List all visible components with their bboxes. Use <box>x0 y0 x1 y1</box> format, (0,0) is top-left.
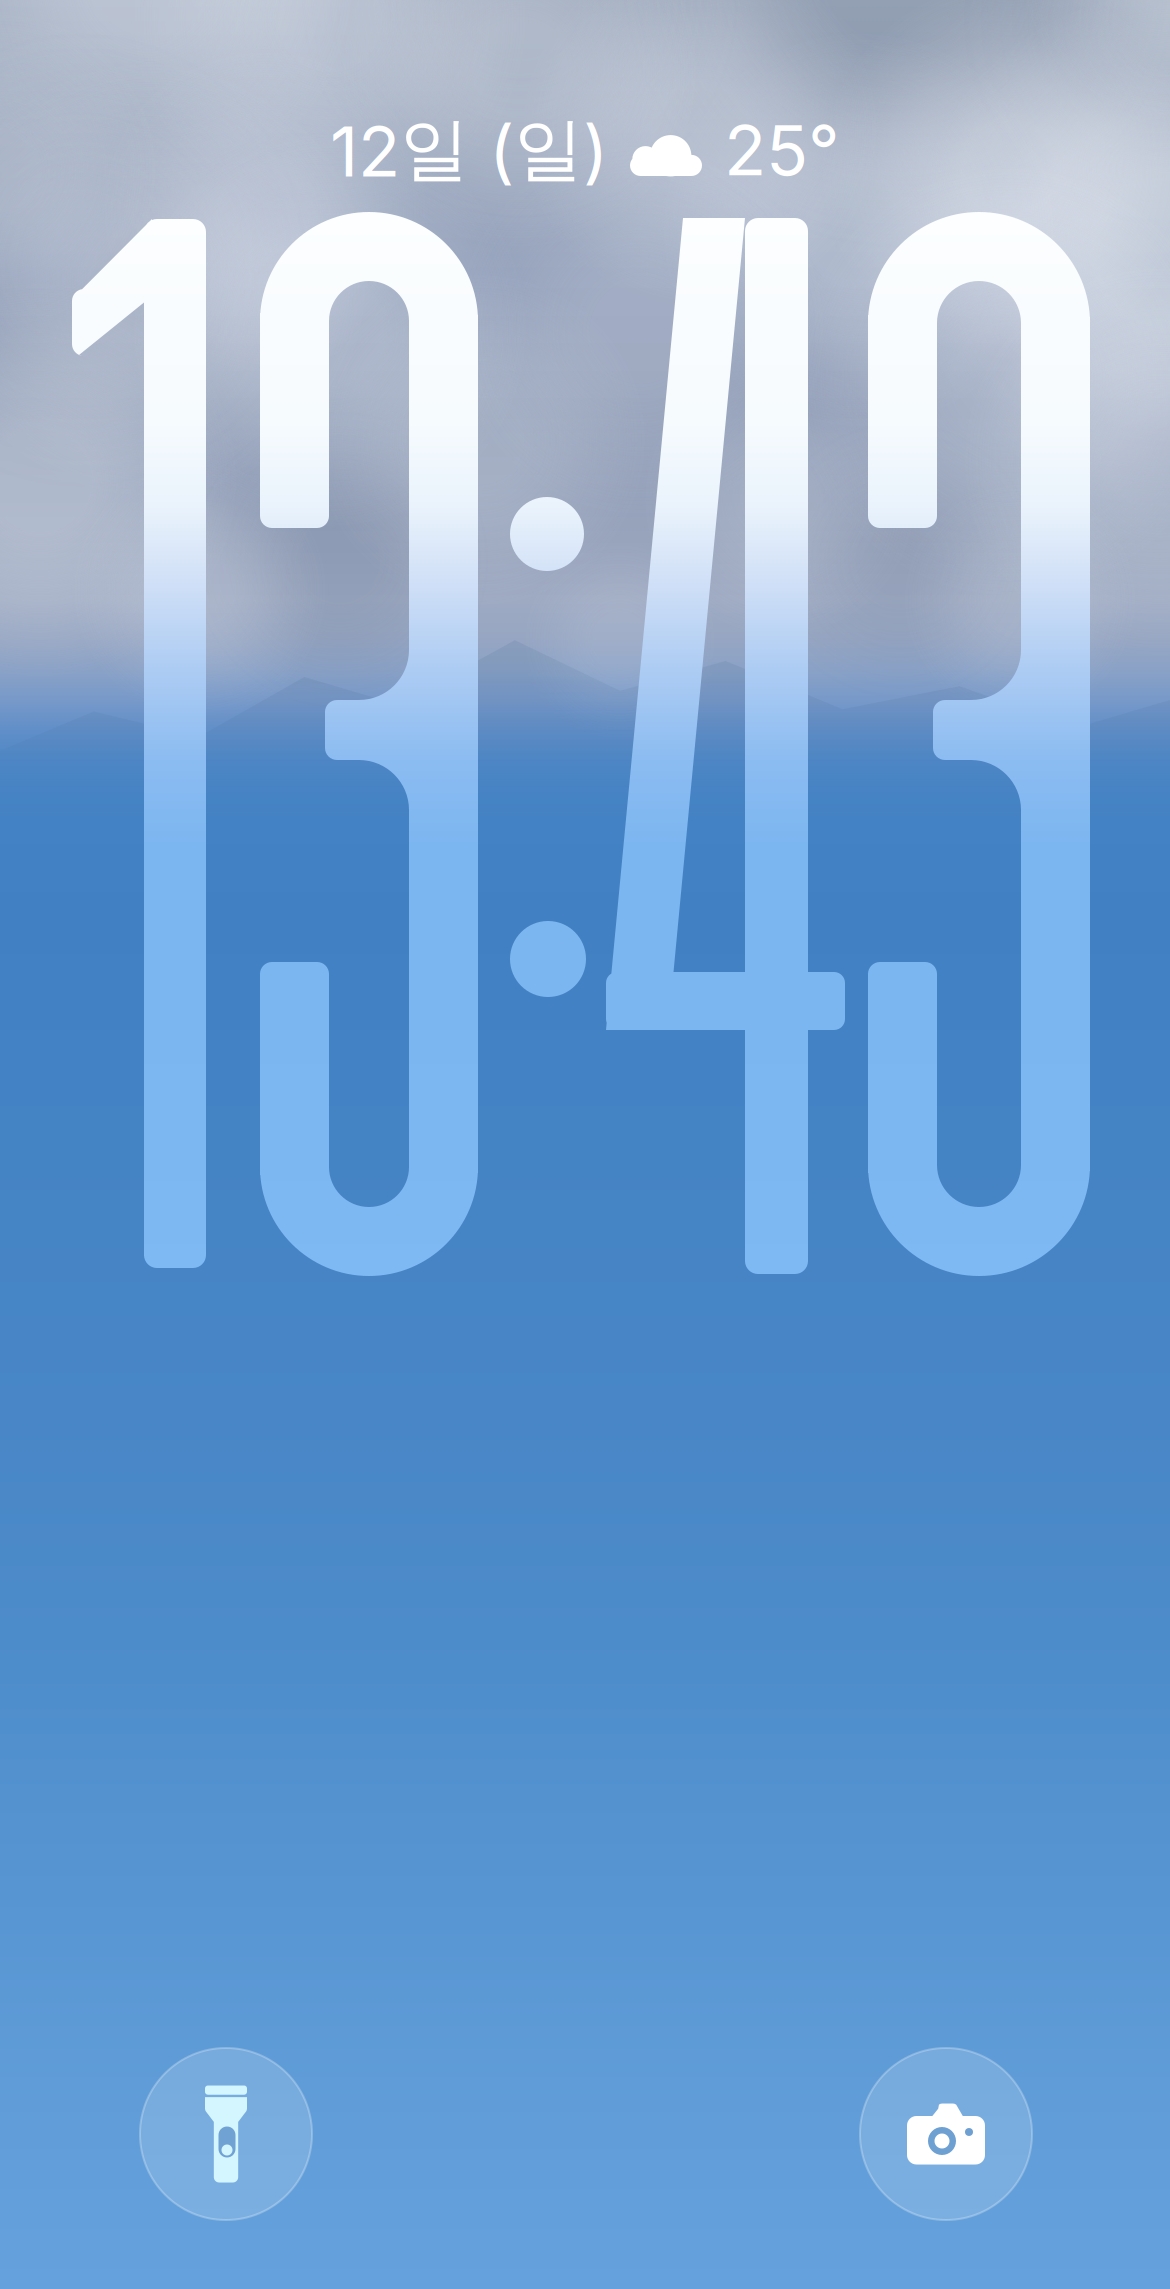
staticText: 25° <box>724 108 840 192</box>
button[interactable]: Camera <box>860 2048 1032 2220</box>
staticText: 12일 (일) <box>330 106 608 194</box>
button[interactable]: Flashlight <box>140 2048 312 2220</box>
